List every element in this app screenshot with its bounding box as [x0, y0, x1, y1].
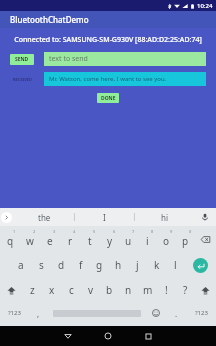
staticText: SEND	[15, 56, 29, 63]
staticText: BluetoothChatDemo	[10, 14, 89, 25]
staticText: g	[96, 258, 103, 272]
staticText: q	[7, 234, 14, 248]
staticText: 9	[170, 229, 173, 234]
button[interactable]: Back	[48, 326, 88, 346]
staticText: ?123	[8, 309, 21, 317]
staticText: 7	[132, 229, 135, 234]
staticText: l	[174, 258, 177, 272]
staticText: c	[69, 283, 74, 297]
button[interactable]: z	[22, 278, 42, 302]
staticText: k	[154, 258, 160, 272]
staticText: 6	[113, 229, 116, 234]
staticText: f	[79, 258, 83, 272]
button[interactable]: Backspace	[195, 226, 216, 252]
button[interactable]: n	[119, 278, 138, 302]
staticText: hi	[161, 212, 169, 223]
button[interactable]: DONE	[97, 93, 119, 103]
staticText: u	[125, 234, 132, 248]
staticText: ,	[37, 308, 40, 319]
staticText: b	[106, 283, 113, 297]
staticText: y	[107, 234, 113, 248]
button[interactable]: 6	[100, 226, 119, 252]
staticText: ?	[183, 283, 188, 297]
button[interactable]: I	[75, 208, 134, 226]
staticText: p	[182, 234, 189, 248]
staticText: t	[88, 234, 92, 248]
staticText: j	[136, 258, 139, 272]
staticText: w	[26, 234, 34, 248]
button[interactable]: ?	[176, 278, 195, 302]
button[interactable]: a	[11, 252, 31, 278]
staticText: Connected to: SAMSUNG-SM-G930V [88:AD:D2…	[8, 35, 208, 45]
staticText: x	[49, 283, 55, 297]
staticText: e	[47, 234, 53, 248]
staticText: DONE	[101, 95, 116, 102]
staticText: 10:24	[197, 2, 213, 10]
button[interactable]: Recent apps	[128, 326, 168, 346]
button[interactable]: Shift	[0, 278, 22, 302]
staticText: 1	[13, 229, 16, 234]
button[interactable]: ,	[28, 302, 49, 324]
staticText: ?123	[195, 309, 208, 317]
staticText: a	[18, 258, 24, 272]
staticText: .	[175, 308, 178, 319]
button[interactable]: 8	[138, 226, 157, 252]
button[interactable]: 0	[176, 226, 195, 252]
staticText: i	[146, 234, 149, 248]
staticText: 2	[33, 229, 36, 234]
button[interactable]: Space	[49, 302, 145, 324]
button[interactable]: x	[42, 278, 62, 302]
staticText: text to send	[49, 54, 88, 64]
button[interactable]: Voice input	[199, 211, 211, 223]
button[interactable]: ?123	[0, 302, 28, 324]
staticText: m	[143, 283, 153, 297]
button[interactable]: Home	[88, 326, 128, 346]
button[interactable]: j	[128, 252, 147, 278]
button[interactable]: v	[81, 278, 100, 302]
button[interactable]: text to send	[44, 52, 206, 66]
button[interactable]: Shift	[195, 278, 216, 302]
button[interactable]: 3	[40, 226, 60, 252]
staticText: v	[88, 283, 94, 297]
button[interactable]: 1	[0, 226, 20, 252]
staticText: h	[115, 258, 122, 272]
button[interactable]: ?123	[187, 302, 216, 324]
button[interactable]: SEND	[10, 54, 34, 65]
button[interactable]: Expand suggestions	[1, 212, 12, 223]
button[interactable]: k	[147, 252, 166, 278]
button[interactable]: .	[166, 302, 187, 324]
button[interactable]: 9	[157, 226, 176, 252]
button[interactable]: 2	[20, 226, 40, 252]
button[interactable]: g	[90, 252, 109, 278]
button[interactable]: 7	[119, 226, 138, 252]
button[interactable]: d	[51, 252, 71, 278]
staticText: Mr. Watson, come here, I want to see you…	[49, 75, 167, 83]
staticText: d	[58, 258, 65, 272]
button[interactable]: f	[71, 252, 90, 278]
staticText: 8	[151, 229, 154, 234]
button[interactable]: 5	[80, 226, 100, 252]
staticText: o	[163, 234, 170, 248]
button[interactable]: Enter	[185, 252, 216, 278]
staticText: n	[125, 283, 132, 297]
button[interactable]: b	[100, 278, 119, 302]
button[interactable]: c	[62, 278, 81, 302]
staticText: 3	[53, 229, 56, 234]
button[interactable]: l	[166, 252, 185, 278]
button[interactable]: hi	[135, 208, 194, 226]
button[interactable]: Emoji	[145, 302, 166, 324]
button[interactable]: s	[31, 252, 51, 278]
button[interactable]: m	[138, 278, 157, 302]
button[interactable]: Mr. Watson, come here, I want to see you…	[44, 72, 206, 86]
button[interactable]: 4	[60, 226, 80, 252]
button[interactable]: h	[109, 252, 128, 278]
staticText: !	[165, 283, 168, 297]
button[interactable]: !	[157, 278, 176, 302]
staticText: z	[30, 283, 35, 297]
staticText: 4	[73, 229, 76, 234]
staticText: the	[38, 212, 51, 223]
staticText: RECEIVED	[13, 77, 32, 82]
button[interactable]: the	[14, 208, 74, 226]
staticText: 5	[93, 229, 96, 234]
staticText: r	[68, 234, 73, 248]
